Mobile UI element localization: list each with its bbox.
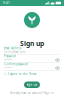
staticText: Sign up [20, 39, 44, 48]
button[interactable]: I agree to the Terms [0, 71, 64, 77]
staticText: Confirm password [4, 62, 28, 66]
button[interactable]: Sign up [24, 81, 40, 88]
staticText: Password [4, 54, 16, 58]
staticText: Email address [4, 46, 21, 50]
staticText: I agree to the Terms [8, 72, 36, 76]
staticText: •••••••• [4, 58, 12, 62]
staticText: Sign up [26, 83, 37, 86]
staticText: hello@mail.com [4, 50, 25, 54]
staticText: Already have an account? Sign in [10, 91, 54, 95]
staticText: 9:41 [3, 1, 10, 5]
staticText: •••••••• [4, 66, 12, 70]
button[interactable]: Already have an account? Sign in [10, 91, 54, 94]
